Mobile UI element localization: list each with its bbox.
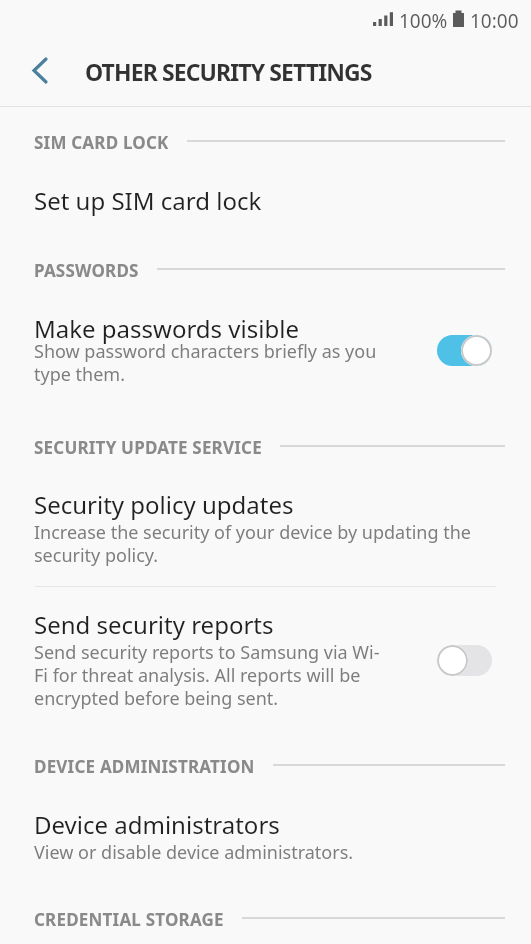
- staticText: Show password characters briefly as you …: [34, 339, 377, 386]
- staticText: View or disable device administrators.: [34, 840, 354, 865]
- staticText: Send security reports to Samsung via Wi-…: [34, 640, 380, 710]
- staticText: Security policy updates: [34, 488, 294, 521]
- button[interactable]: [0, 598, 531, 718]
- staticText: CREDENTIAL STORAGE: [34, 908, 224, 928]
- staticText: SIM CARD LOCK: [34, 131, 169, 151]
- button[interactable]: [0, 168, 531, 228]
- staticText: DEVICE ADMINISTRATION: [34, 755, 255, 775]
- button[interactable]: [0, 476, 531, 576]
- staticText: SECURITY UPDATE SERVICE: [34, 436, 262, 456]
- staticText: OTHER SECURITY SETTINGS: [85, 56, 372, 87]
- button[interactable]: [0, 300, 531, 400]
- button[interactable]: [437, 645, 492, 676]
- staticText: PASSWORDS: [34, 259, 139, 279]
- staticText: Make passwords visible: [34, 312, 299, 345]
- staticText: Set up SIM card lock: [34, 184, 262, 217]
- button[interactable]: [437, 335, 492, 366]
- staticText: 10:00: [470, 8, 519, 34]
- button[interactable]: [20, 50, 64, 92]
- staticText: Increase the security of your device by …: [34, 520, 471, 567]
- staticText: Send security reports: [34, 608, 274, 641]
- staticText: Device administrators: [34, 808, 280, 841]
- button[interactable]: [0, 796, 531, 876]
- staticText: 100%: [399, 8, 448, 34]
